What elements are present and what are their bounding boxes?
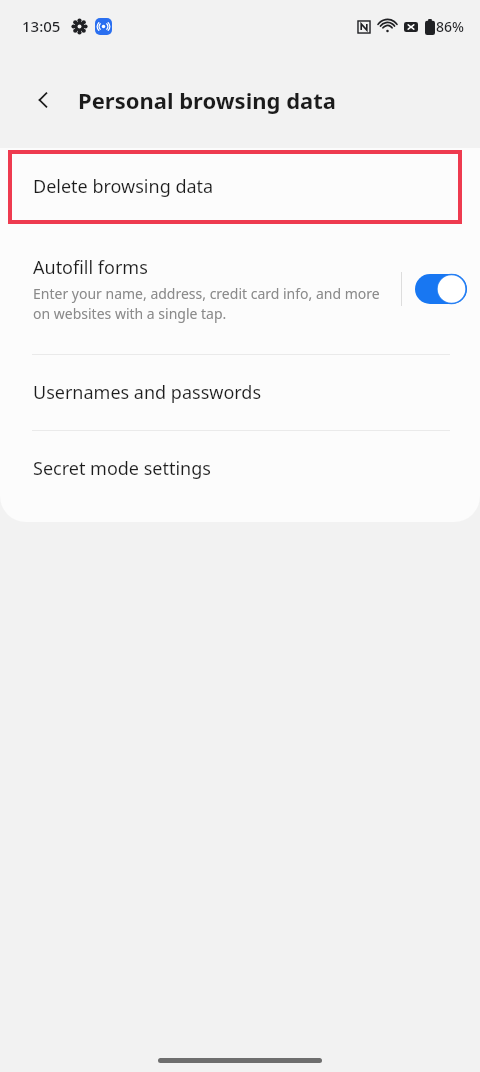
staticText: Delete browsing data <box>33 174 214 199</box>
staticText: 86% <box>436 17 464 36</box>
staticText: Autofill forms <box>33 255 148 280</box>
button[interactable]: Autofill forms toggle <box>402 259 480 319</box>
staticText: Usernames and passwords <box>33 380 262 405</box>
button[interactable]: Delete browsing data <box>0 148 480 224</box>
staticText: Personal browsing data <box>78 85 336 115</box>
button[interactable]: Secret mode settings <box>0 431 480 506</box>
staticText: Secret mode settings <box>33 456 211 481</box>
staticText: Enter your name, address, credit card in… <box>33 284 389 324</box>
staticText: 13:05 <box>22 16 61 36</box>
button[interactable]: Back <box>22 78 66 122</box>
button[interactable]: Autofill forms <box>0 224 480 354</box>
button[interactable]: Usernames and passwords <box>0 355 480 430</box>
